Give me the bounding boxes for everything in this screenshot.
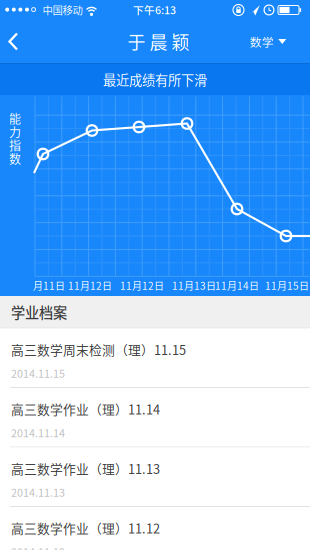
staticText: 最近成绩有所下滑	[103, 70, 207, 89]
staticText: 下午6:13	[133, 2, 176, 17]
staticText: 11月12日	[120, 278, 164, 293]
staticText: 11月14日	[215, 278, 259, 293]
staticText: 学业档案	[11, 302, 67, 322]
button[interactable]: 数学	[237, 20, 299, 63]
button[interactable]: 高三数学作业（理）11.14	[0, 388, 310, 447]
staticText: 2014.11.13	[11, 484, 65, 500]
staticText: 11月13日	[172, 278, 216, 293]
staticText: 能	[9, 110, 21, 127]
staticText: 中国移动	[42, 2, 82, 17]
staticText: 高三数学周末检测（理）11.15	[11, 340, 186, 359]
button[interactable]: Back	[0, 20, 30, 63]
staticText: 11月12日	[68, 278, 112, 293]
staticText: 数	[9, 150, 21, 167]
staticText: 11月15日	[265, 278, 309, 293]
staticText: 月11日	[33, 278, 65, 293]
staticText: 于 晨 颖	[127, 28, 189, 54]
button[interactable]: 高三数学作业（理）11.12	[0, 507, 310, 550]
staticText: 数学	[250, 33, 274, 50]
staticText: 指	[9, 137, 21, 154]
button[interactable]: 高三数学作业（理）11.13	[0, 447, 310, 507]
staticText: 2014.11.14	[11, 425, 65, 440]
staticText: 力	[9, 123, 21, 141]
staticText: 高三数学作业（理）11.14	[11, 400, 160, 418]
button[interactable]: 高三数学周末检测（理）11.15	[0, 328, 310, 388]
staticText: 2014.11.12	[11, 544, 65, 550]
staticText: 2014.11.15	[11, 365, 65, 381]
staticText: 高三数学作业（理）11.12	[11, 519, 160, 537]
staticText: 高三数学作业（理）11.13	[11, 459, 160, 478]
